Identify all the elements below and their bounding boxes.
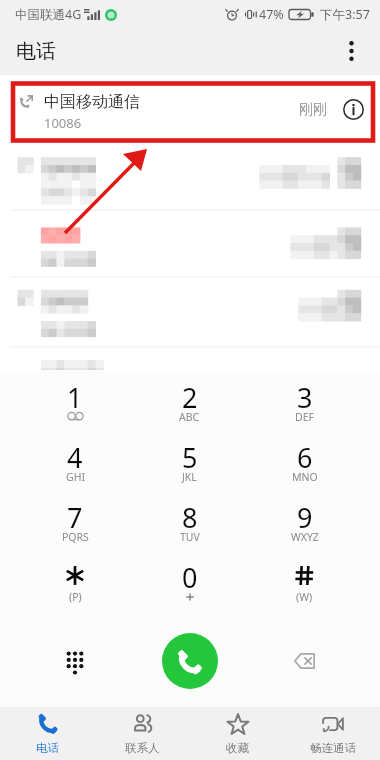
staticText: (P) <box>69 590 82 604</box>
staticText: 6 <box>297 439 313 476</box>
staticText: 3 <box>297 379 313 416</box>
button[interactable]: Delete <box>247 615 362 707</box>
button[interactable]: 0 <box>132 555 247 615</box>
staticText: GHI <box>66 470 85 484</box>
button[interactable]: 6 <box>247 435 362 495</box>
staticText: 电话 <box>36 741 59 755</box>
button[interactable]: 电话 <box>0 707 95 760</box>
staticText: PQRS <box>62 530 89 544</box>
staticText: 4 <box>67 439 83 476</box>
staticText: 中国移动通信 <box>44 92 140 112</box>
button[interactable]: (W) <box>247 555 362 615</box>
button[interactable]: 5 <box>132 435 247 495</box>
staticText: 畅连通话 <box>310 741 356 755</box>
button[interactable]: 畅连通话 <box>285 707 380 760</box>
staticText: ABC <box>179 410 200 424</box>
staticText: DEF <box>295 410 314 424</box>
staticText: TUV <box>180 530 200 544</box>
staticText: (W) <box>296 590 313 604</box>
button[interactable]: 4 <box>18 435 132 495</box>
staticText: 联系人 <box>125 741 160 755</box>
staticText: 5 <box>182 439 198 476</box>
staticText: MNO <box>292 470 318 484</box>
button[interactable]: More options <box>334 28 380 75</box>
staticText: 收藏 <box>226 741 249 755</box>
staticText: JKL <box>182 470 197 484</box>
button[interactable]: 收藏 <box>190 707 285 760</box>
button[interactable]: 9 <box>247 495 362 555</box>
staticText: 0 <box>182 559 198 596</box>
button[interactable]: (P) <box>18 555 132 615</box>
staticText: 10086 <box>44 114 82 132</box>
button[interactable]: Hide keypad <box>18 615 132 707</box>
button[interactable]: Call details <box>336 92 370 126</box>
staticText: 电话 <box>16 39 56 64</box>
staticText: 1 <box>67 379 83 416</box>
staticText: 下午3:57 <box>320 6 370 23</box>
button[interactable]: 2 <box>132 375 247 435</box>
staticText: 2 <box>182 379 198 416</box>
staticText: 47% <box>259 6 284 23</box>
button[interactable]: 1 <box>18 375 132 435</box>
staticText: 7 <box>67 499 83 536</box>
staticText: WXYZ <box>291 530 319 544</box>
button[interactable]: Call <box>162 633 218 689</box>
button[interactable]: 8 <box>132 495 247 555</box>
staticText: 中国联通4G <box>15 6 82 23</box>
staticText: 刚刚 <box>299 101 327 119</box>
button[interactable]: 3 <box>247 375 362 435</box>
button[interactable]: 7 <box>18 495 132 555</box>
staticText: 8 <box>182 499 198 536</box>
staticText: 9 <box>297 499 313 536</box>
button[interactable]: 中国移动通信 <box>0 75 380 143</box>
button[interactable]: 联系人 <box>95 707 190 760</box>
